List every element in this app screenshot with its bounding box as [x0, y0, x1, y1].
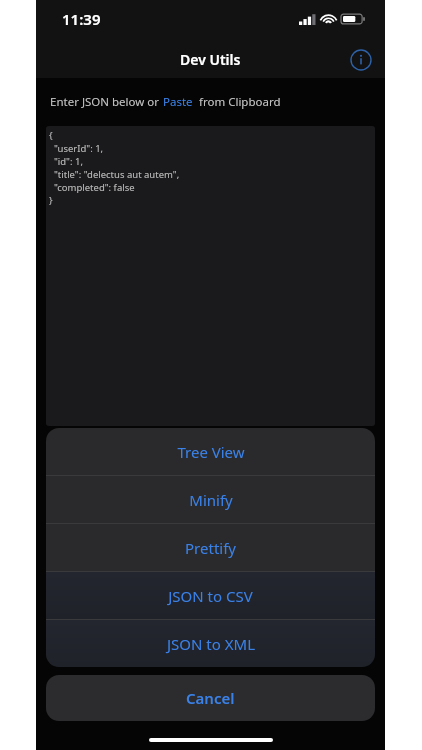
- staticText: "userId": 1,: [49, 142, 104, 155]
- staticText: Paste: [163, 94, 193, 110]
- staticText: Minify: [189, 490, 233, 510]
- button[interactable]: Cancel: [46, 675, 375, 721]
- staticText: "id": 1,: [49, 155, 83, 168]
- staticText: Cancel: [186, 688, 235, 708]
- button[interactable]: Paste: [163, 94, 193, 110]
- staticText: JSON to CSV: [168, 586, 253, 606]
- staticText: from Clipboard: [193, 94, 281, 110]
- button[interactable]: {: [46, 126, 375, 426]
- staticText: {: [49, 129, 53, 142]
- button[interactable]: Tree View: [46, 428, 375, 475]
- button[interactable]: Minify: [46, 476, 375, 523]
- staticText: "title": "delectus aut autem",: [49, 168, 180, 181]
- button[interactable]: JSON to XML: [46, 620, 375, 667]
- button[interactable]: Info: [345, 44, 377, 76]
- staticText: }: [49, 194, 53, 207]
- staticText: Enter JSON below or: [50, 94, 163, 110]
- staticText: Prettify: [185, 538, 236, 558]
- button[interactable]: JSON to CSV: [46, 572, 375, 619]
- staticText: Dev Utils: [180, 50, 241, 69]
- staticText: 11:39: [62, 9, 101, 29]
- button[interactable]: Prettify: [46, 524, 375, 571]
- staticText: Tree View: [177, 442, 245, 462]
- staticText: "completed": false: [49, 181, 135, 194]
- staticText: JSON to XML: [167, 634, 255, 654]
